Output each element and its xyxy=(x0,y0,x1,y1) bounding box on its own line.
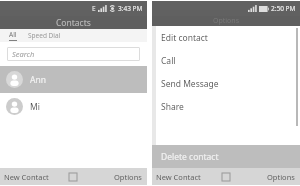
button[interactable]: Home xyxy=(210,168,242,185)
button[interactable]: Options xyxy=(242,168,300,185)
button[interactable]: Ann xyxy=(0,66,147,93)
staticText: Share xyxy=(161,101,184,113)
staticText: Delete contact xyxy=(161,151,219,163)
staticText: Ann xyxy=(30,74,46,86)
staticText: Options xyxy=(213,16,240,26)
button[interactable]: New Contact xyxy=(152,168,210,185)
button[interactable]: Call xyxy=(156,49,300,72)
staticText: All xyxy=(9,30,17,39)
staticText: Send Message xyxy=(161,78,219,90)
button[interactable]: Delete contact xyxy=(152,145,300,168)
staticText: Search xyxy=(12,49,35,59)
staticText: Options xyxy=(114,172,142,182)
button[interactable]: Options xyxy=(89,168,147,185)
button[interactable]: Speed Dial xyxy=(26,29,88,42)
button[interactable]: Search xyxy=(7,47,140,61)
button[interactable]: Mi xyxy=(0,93,147,120)
staticText: New Contact xyxy=(156,172,201,182)
button[interactable]: Send Message xyxy=(156,72,300,95)
staticText: Edit contact xyxy=(161,32,208,44)
button[interactable]: New Contact xyxy=(0,168,57,185)
button[interactable]: Home xyxy=(57,168,89,185)
staticText: Options xyxy=(267,172,295,182)
staticText: E xyxy=(92,4,96,13)
button[interactable]: Edit contact xyxy=(156,26,300,49)
staticText: Speed Dial xyxy=(28,31,61,40)
staticText: Call xyxy=(161,55,176,67)
button[interactable]: All xyxy=(0,29,26,42)
staticText: Contacts xyxy=(56,17,91,29)
staticText: 3:43 PM xyxy=(118,4,143,13)
staticText: 2:50 PM xyxy=(271,4,296,13)
staticText: New Contact xyxy=(4,172,49,182)
button[interactable]: Share xyxy=(156,95,300,118)
staticText: Mi xyxy=(30,101,40,113)
